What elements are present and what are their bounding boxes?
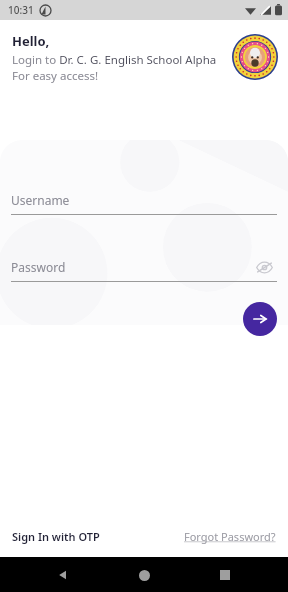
staticText: Password: [11, 259, 66, 275]
staticText: Hello,: [12, 32, 50, 50]
staticText: Forgot Password?: [184, 529, 276, 544]
button[interactable]: Home: [129, 560, 159, 590]
button[interactable]: Back: [48, 560, 78, 590]
staticText: Sign In with OTP: [12, 529, 100, 544]
staticText: For easy access!: [12, 68, 99, 84]
button[interactable]: Forgot Password?: [184, 525, 276, 548]
button[interactable]: Sign In with OTP: [12, 525, 100, 548]
button[interactable]: Username: [11, 186, 277, 214]
staticText: Login to Dr. C. G. English School Alpha: [12, 52, 217, 68]
button[interactable]: Password: [11, 253, 277, 281]
button[interactable]: Show password: [251, 254, 277, 280]
staticText: Username: [11, 192, 70, 208]
button[interactable]: Login: [243, 302, 277, 336]
button[interactable]: Recents: [210, 560, 240, 590]
staticText: 10:31: [8, 3, 34, 17]
